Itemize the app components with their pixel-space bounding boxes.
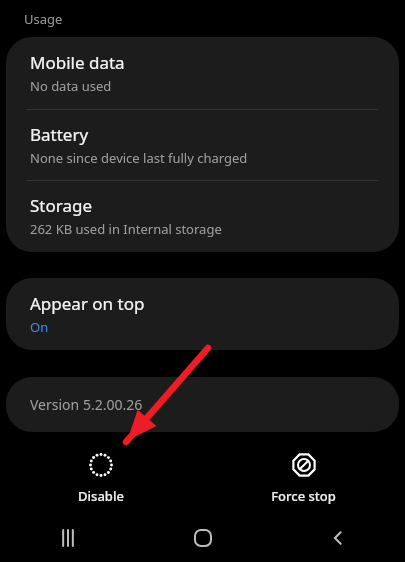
button[interactable]: Storage [6,181,399,252]
staticText: Version 5.2.00.26 [30,395,143,414]
staticText: Usage [24,10,63,28]
staticText: Appear on top [30,292,145,315]
staticText: Force stop [271,487,336,505]
staticText: No data used [30,77,112,95]
staticText: Mobile data [30,51,125,74]
button[interactable]: Disable [0,442,202,514]
button[interactable]: Force stop [202,442,405,514]
button[interactable]: Home [135,514,270,562]
button[interactable]: Battery [6,110,399,180]
staticText: 262 KB used in Internal storage [30,220,222,238]
staticText: Disable [78,487,124,505]
button[interactable]: Appear on top [6,278,399,350]
staticText: On [30,318,49,336]
staticText: Storage [30,194,93,217]
staticText: None since device last fully charged [30,149,248,167]
button[interactable]: Back [270,514,405,562]
button[interactable]: Recents [0,514,135,562]
staticText: Battery [30,123,89,146]
button[interactable]: Mobile data [6,37,399,109]
